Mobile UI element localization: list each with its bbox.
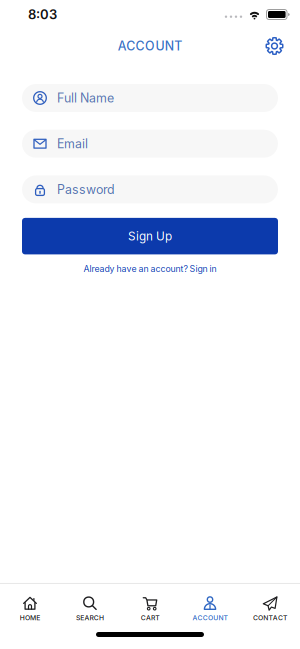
staticText: ACCOUNT [192, 614, 228, 622]
staticText: Password [57, 182, 115, 197]
staticText: CONTACT [253, 614, 287, 622]
staticText: 8:03 [28, 7, 57, 22]
staticText: Full Name [57, 90, 114, 105]
staticText: SEARCH [76, 614, 104, 622]
staticText: Sign Up [128, 229, 172, 243]
staticText: CART [141, 614, 159, 622]
staticText: ACCOUNT [118, 38, 182, 53]
staticText: HOME [20, 614, 40, 622]
staticText: Email [57, 136, 88, 151]
staticText: Already have an account? Sign in [83, 263, 216, 274]
